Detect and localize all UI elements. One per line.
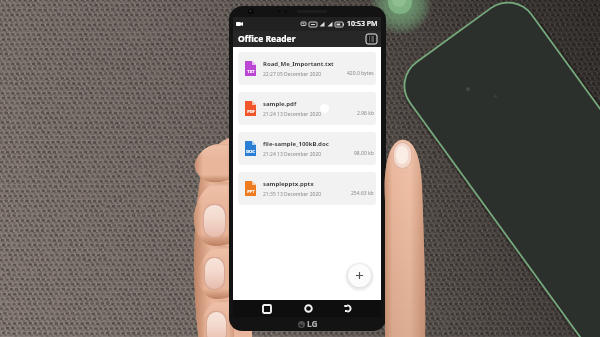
staticText: LG	[307, 318, 318, 330]
staticText: Road_Me_Important.txt	[263, 60, 334, 68]
staticText: 254.63 kb	[351, 190, 374, 197]
staticText: file-sample_100kB.doc	[263, 140, 329, 148]
button[interactable]: Switch view	[365, 33, 377, 45]
staticText: 2.96 kb	[357, 110, 374, 117]
staticText: TXT	[247, 69, 255, 74]
staticText: 22:27 05 December 2020	[263, 71, 322, 78]
staticText: DOC	[246, 149, 255, 154]
staticText: 21:24 13 December 2020	[263, 111, 322, 118]
button[interactable]: DOC	[238, 132, 376, 165]
button[interactable]: Add file	[345, 261, 374, 290]
staticText: 10:53 PM	[347, 19, 378, 29]
button[interactable]: Back	[338, 302, 357, 315]
staticText: sample.pdf	[263, 100, 297, 108]
staticText: samplepptx.pptx	[263, 180, 314, 188]
staticText: 21:35 13 December 2020	[263, 191, 322, 198]
staticText: 98.00 kb	[354, 150, 374, 157]
button[interactable]: PDF	[238, 92, 376, 125]
button[interactable]: PPT	[238, 172, 376, 205]
staticText: PPT	[247, 189, 255, 194]
staticText: 420.0 bytes	[347, 70, 374, 77]
staticText: Office Reader	[238, 33, 296, 45]
staticText: PDF	[247, 109, 255, 114]
staticText: 21:24 13 December 2020	[263, 151, 322, 158]
button[interactable]: Recents	[257, 302, 276, 315]
button[interactable]: TXT	[238, 52, 376, 85]
button[interactable]: Home	[299, 302, 318, 315]
